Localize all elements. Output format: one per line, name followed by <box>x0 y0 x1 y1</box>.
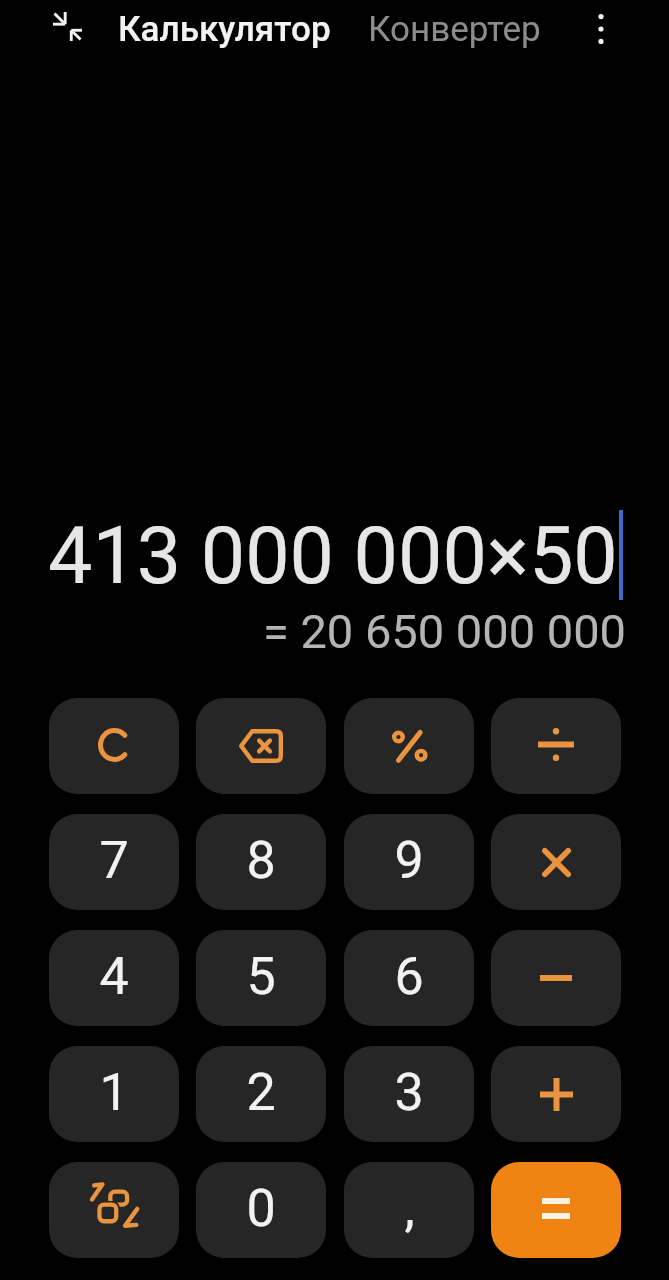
button[interactable]: Equals <box>491 1162 621 1258</box>
staticText: 2 <box>246 1062 276 1123</box>
button[interactable]: 0 <box>196 1162 326 1258</box>
button[interactable]: Backspace <box>196 698 326 794</box>
staticText: 0 <box>246 1178 276 1239</box>
button[interactable]: More options <box>561 0 641 58</box>
staticText: 6 <box>394 946 424 1007</box>
button[interactable]: Конвертер <box>366 1 543 58</box>
button[interactable]: 5 <box>196 930 326 1026</box>
button[interactable]: 4 <box>49 930 179 1026</box>
staticText: 9 <box>394 830 424 891</box>
button[interactable]: Divide <box>491 698 621 794</box>
button[interactable]: Formulas <box>49 1162 179 1258</box>
staticText: = 20 650 000 000 <box>263 604 626 659</box>
staticText: 7 <box>99 830 129 891</box>
staticText: 8 <box>246 830 276 891</box>
button[interactable]: Multiply <box>491 814 621 910</box>
button[interactable]: 7 <box>49 814 179 910</box>
staticText: 3 <box>394 1062 424 1123</box>
button[interactable]: , <box>344 1162 474 1258</box>
button[interactable]: 9 <box>344 814 474 910</box>
staticText: 4 <box>99 946 129 1007</box>
staticText: 5 <box>246 946 276 1007</box>
button[interactable]: 1 <box>49 1046 179 1142</box>
button[interactable]: 3 <box>344 1046 474 1142</box>
button[interactable]: 8 <box>196 814 326 910</box>
button[interactable]: Subtract <box>491 930 621 1026</box>
staticText: Калькулятор <box>118 9 331 50</box>
button[interactable]: 6 <box>344 930 474 1026</box>
button[interactable]: Калькулятор <box>116 1 333 58</box>
staticText: 413 000 000×50 <box>48 510 618 603</box>
button[interactable]: Collapse window <box>45 4 89 48</box>
button[interactable]: Clear <box>49 698 179 794</box>
button[interactable]: 2 <box>196 1046 326 1142</box>
staticText: 1 <box>99 1062 129 1123</box>
button[interactable]: Percent <box>344 698 474 794</box>
button[interactable]: Add <box>491 1046 621 1142</box>
staticText: , <box>404 1178 415 1239</box>
staticText: Конвертер <box>368 9 541 50</box>
